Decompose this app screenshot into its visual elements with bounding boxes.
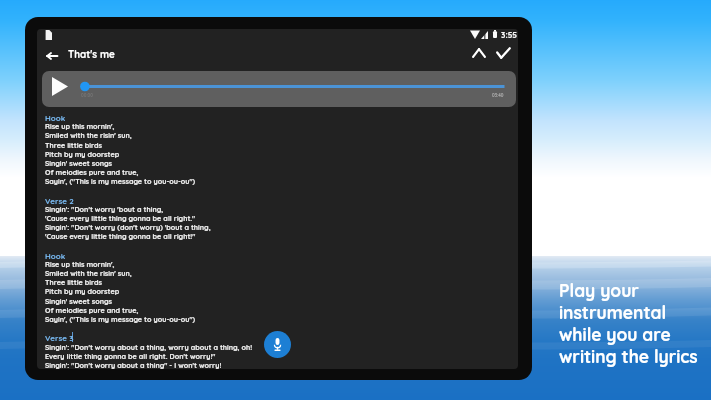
staticText: while you are xyxy=(559,324,671,346)
staticText: Singin': "Don't worry about a thing" - I… xyxy=(45,361,222,369)
button[interactable]: Back xyxy=(39,43,65,69)
staticText: 03:40 xyxy=(492,93,504,99)
staticText: 'Cause every little thing gonna be all r… xyxy=(45,232,196,241)
staticText: 'Cause every little thing gonna be all r… xyxy=(45,214,196,223)
staticText: Pitch by my doorstep xyxy=(45,287,120,296)
staticText: Rise up this mornin', xyxy=(45,260,115,269)
staticText: Sayin', ("This is my message to you-ou-o… xyxy=(45,315,196,324)
button[interactable]: Save lyrics xyxy=(491,41,515,65)
staticText: writing the lyrics xyxy=(559,346,698,368)
button[interactable]: Collapse editor xyxy=(467,41,491,65)
button[interactable]: Record voice xyxy=(264,331,291,358)
staticText: Play your xyxy=(559,280,639,302)
staticText: Three little birds xyxy=(45,278,102,287)
staticText: Every little thing gonna be all right. D… xyxy=(45,352,216,361)
staticText: Of melodies pure and true, xyxy=(45,168,139,177)
staticText: Verse 3 xyxy=(45,333,74,343)
staticText: Sayin', ("This is my message to you-ou-o… xyxy=(45,177,196,186)
staticText: 00:00 xyxy=(81,93,93,99)
staticText: Three little birds xyxy=(45,141,102,150)
staticText: Hook xyxy=(45,113,66,123)
staticText: Verse 2 xyxy=(45,196,74,206)
staticText: Pitch by my doorstep xyxy=(45,150,120,159)
staticText: Rise up this mornin', xyxy=(45,122,115,131)
staticText: instrumental xyxy=(559,302,667,324)
staticText: Smiled with the risin' sun, xyxy=(45,269,132,278)
button[interactable]: Play xyxy=(47,73,73,99)
staticText: Hook xyxy=(45,251,66,261)
staticText: Smiled with the risin' sun, xyxy=(45,131,132,140)
staticText: Singin': "Don't worry about a thing, wor… xyxy=(45,343,253,352)
staticText: 3:55 xyxy=(501,30,518,40)
staticText: Of melodies pure and true, xyxy=(45,306,139,315)
staticText: Singin': "Don't worry 'bout a thing, xyxy=(45,205,164,214)
staticText: Singin': "Don't worry (don't worry) 'bou… xyxy=(45,223,211,232)
staticText: Singin' sweet songs xyxy=(45,297,113,306)
staticText: That's me xyxy=(68,48,115,60)
staticText: Singin' sweet songs xyxy=(45,159,113,168)
